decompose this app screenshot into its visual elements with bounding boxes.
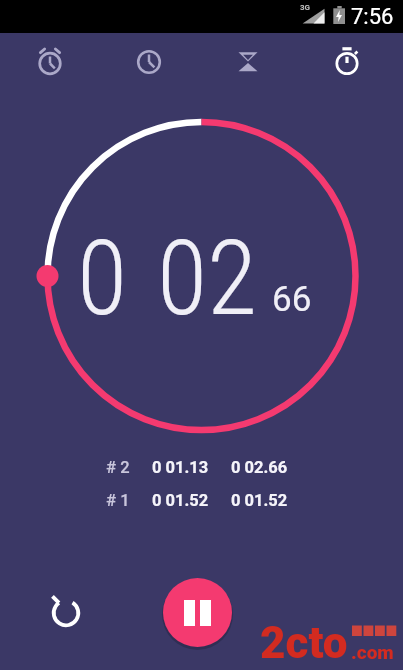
staticText: 0 02.66 <box>231 458 288 477</box>
button[interactable] <box>297 33 396 91</box>
staticText: 0 01.52 <box>152 491 209 510</box>
staticText: 0 01.13 <box>152 458 209 477</box>
staticText: # 1 <box>106 491 130 510</box>
staticText: .com <box>351 641 394 663</box>
staticText: 66 <box>272 279 312 320</box>
staticText: 2cto <box>260 617 348 669</box>
staticText: 02 <box>157 218 258 339</box>
button[interactable] <box>43 589 89 635</box>
button[interactable] <box>163 578 232 647</box>
staticText: 0 01.52 <box>231 491 288 510</box>
staticText: # 2 <box>106 458 130 477</box>
button[interactable] <box>0 33 99 91</box>
button[interactable] <box>99 33 198 91</box>
staticText: 0 <box>77 218 128 339</box>
staticText: 3G <box>300 3 311 12</box>
button[interactable] <box>198 33 297 91</box>
staticText: 7:56 <box>351 4 394 30</box>
